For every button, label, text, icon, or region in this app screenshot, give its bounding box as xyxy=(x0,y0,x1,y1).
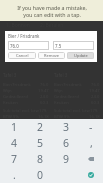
staticText: 8 xyxy=(37,152,44,166)
staticText: BTW 9% xyxy=(54,114,70,120)
staticText: Bier / Frisdrank xyxy=(8,33,40,39)
button[interactable]: 2 xyxy=(27,119,53,135)
button[interactable]: 6 xyxy=(53,135,79,151)
staticText: . xyxy=(13,168,16,182)
button[interactable]: , xyxy=(79,135,103,151)
staticText: BTW 9% xyxy=(3,114,19,120)
button[interactable]: 76.0 xyxy=(8,41,49,50)
button[interactable]: - xyxy=(79,119,103,135)
staticText: 1 xyxy=(11,120,18,134)
button[interactable]: 7.5 xyxy=(53,41,94,50)
button[interactable]: . xyxy=(1,167,27,183)
staticText: Remove xyxy=(44,53,60,58)
staticText: 3 xyxy=(63,120,70,134)
button[interactable]: 4 xyxy=(1,135,27,151)
staticText: 0 xyxy=(37,168,44,182)
staticText: 76.0 xyxy=(10,43,19,49)
staticText: Update xyxy=(74,53,88,58)
staticText: 16.18 xyxy=(89,114,100,120)
button[interactable]: 3 xyxy=(53,119,79,135)
button[interactable]: 9 xyxy=(53,151,79,167)
staticText: 9 xyxy=(63,152,70,166)
staticText: 6 xyxy=(63,136,70,150)
staticText: 7.5 xyxy=(55,43,62,49)
other: Backspace xyxy=(88,157,94,161)
button[interactable]: 0 xyxy=(27,167,53,183)
staticText: 4 xyxy=(11,136,18,150)
staticText: 16.18 xyxy=(38,114,49,120)
button[interactable]: Backspace xyxy=(79,151,103,167)
button[interactable]: Confirm xyxy=(79,167,103,183)
staticText: - xyxy=(89,120,93,134)
staticText: If you have made a mistake, you can edit… xyxy=(17,4,87,18)
staticText: 2 xyxy=(37,120,44,134)
button[interactable]: 7 xyxy=(1,151,27,167)
staticText: 5 xyxy=(37,136,44,150)
button[interactable]: Confirm xyxy=(88,172,94,178)
button[interactable]: Remove xyxy=(38,52,65,59)
button[interactable]: 5 xyxy=(27,135,53,151)
button[interactable]: Cancel xyxy=(8,52,36,59)
staticText: 7 xyxy=(11,152,18,166)
staticText: Cancel xyxy=(16,53,29,58)
staticText: , xyxy=(90,136,93,150)
button[interactable]: 1 xyxy=(1,119,27,135)
button[interactable]: Update xyxy=(67,52,94,59)
button[interactable]: 8 xyxy=(27,151,53,167)
